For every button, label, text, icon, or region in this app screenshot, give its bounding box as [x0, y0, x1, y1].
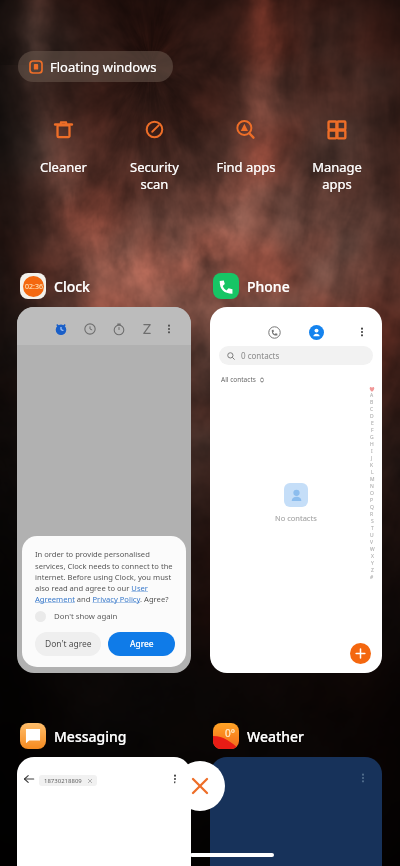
staticText: W	[370, 546, 375, 553]
staticText: #	[370, 574, 374, 581]
staticText: Q	[370, 504, 374, 511]
staticText: L	[371, 469, 374, 476]
button[interactable]: Timer	[141, 323, 153, 335]
button[interactable]: Contacts	[309, 325, 324, 340]
staticText: P	[370, 497, 374, 504]
staticText: J	[371, 455, 373, 462]
button[interactable]: Agree	[108, 632, 175, 656]
staticText: V	[370, 539, 374, 546]
staticText: Security scan	[130, 158, 179, 193]
staticText: In order to provide personalised service…	[35, 549, 175, 604]
button[interactable]: Messaging	[20, 721, 127, 751]
staticText: S	[371, 518, 374, 525]
button[interactable]: Phone	[213, 271, 290, 301]
button[interactable]: All contacts	[221, 375, 265, 384]
staticText: M	[370, 476, 375, 483]
staticText: Messaging	[54, 727, 127, 746]
staticText: 0°	[225, 726, 235, 740]
button[interactable]: Back	[24, 774, 34, 784]
button[interactable]: 0°	[213, 721, 305, 751]
button[interactable]: Security scan	[109, 120, 200, 193]
staticText: Z	[371, 567, 374, 574]
staticText: H	[370, 441, 374, 448]
staticText: F	[371, 427, 374, 434]
button[interactable]: Don't agree	[35, 632, 101, 656]
staticText: 0 contacts	[241, 350, 280, 361]
staticText: Clock	[54, 277, 90, 296]
button[interactable]: Stopwatch	[113, 323, 125, 335]
staticText: D	[370, 413, 374, 420]
staticText: Weather	[247, 727, 305, 746]
staticText: X	[371, 553, 374, 560]
button[interactable]: More options	[357, 772, 369, 784]
button[interactable]: 02:36	[20, 271, 90, 301]
button[interactable]: Dialer	[210, 307, 382, 673]
staticText: R	[370, 511, 374, 518]
staticText: G	[370, 434, 374, 441]
button[interactable]: More options	[163, 323, 175, 335]
staticText: 18730218809	[44, 777, 82, 785]
staticText: U	[370, 532, 374, 539]
staticText: E	[371, 420, 374, 427]
staticText: All contacts	[221, 375, 256, 384]
staticText: Find apps	[216, 158, 276, 176]
staticText: N	[370, 483, 374, 490]
button[interactable]: Floating windows	[18, 51, 173, 82]
staticText: 02:36	[25, 282, 43, 292]
button[interactable]: Cleaner	[18, 120, 109, 176]
staticText: Don't show again	[54, 611, 118, 622]
staticText: Phone	[247, 277, 290, 296]
button[interactable]: More options	[17, 757, 191, 866]
button[interactable]: 0 contacts	[219, 346, 373, 365]
staticText: Cleaner	[40, 158, 87, 176]
button[interactable]: More options	[210, 757, 382, 866]
staticText: Y	[371, 560, 374, 567]
button[interactable]: 18730218809	[39, 775, 97, 786]
staticText: Agree	[130, 638, 154, 650]
staticText: O	[370, 490, 374, 497]
button[interactable]: Manage apps	[291, 120, 382, 193]
button[interactable]: Alarm	[55, 323, 67, 335]
button[interactable]: Find apps	[200, 120, 291, 176]
button[interactable]: Close all	[175, 761, 225, 811]
staticText: No contacts	[275, 513, 317, 523]
staticText: T	[371, 525, 374, 532]
button[interactable]: Add contact	[350, 643, 371, 664]
button[interactable]: Alarm	[17, 307, 191, 673]
staticText: Manage apps	[312, 158, 362, 193]
staticText: Don't agree	[45, 638, 92, 650]
staticText: B	[370, 399, 374, 406]
staticText: C	[370, 406, 374, 413]
staticText: K	[370, 462, 374, 469]
staticText: A	[370, 392, 374, 399]
button[interactable]: World clock	[84, 323, 96, 335]
button[interactable]: Dialer	[268, 326, 281, 339]
staticText: Floating windows	[50, 58, 157, 76]
button[interactable]: More options	[356, 326, 368, 338]
staticText: I	[371, 448, 373, 455]
button[interactable]: More options	[169, 773, 181, 785]
